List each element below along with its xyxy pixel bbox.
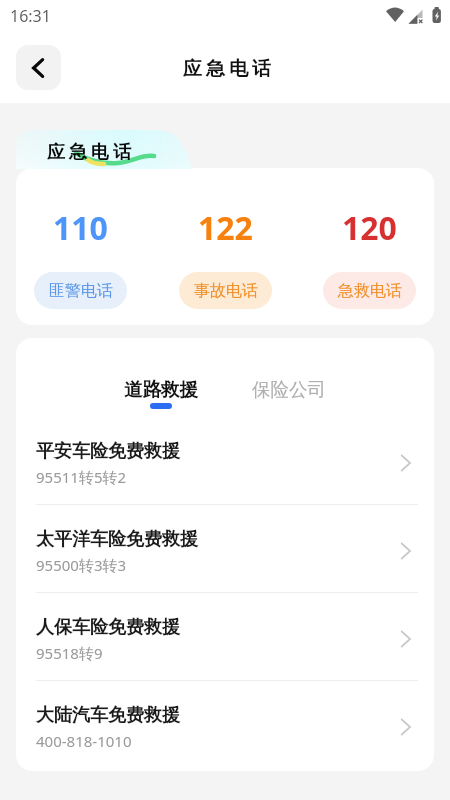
button[interactable]: 保险公司 — [252, 338, 326, 415]
staticText: 16:31 — [10, 5, 51, 27]
button[interactable]: 110 — [34, 168, 127, 325]
staticText: 110 — [53, 206, 108, 240]
button[interactable]: 120 — [323, 168, 416, 325]
staticText: 95500转3转3 — [36, 555, 127, 575]
staticText: 平安车险免费救援 — [36, 440, 180, 463]
staticText: 大陆汽车免费救援 — [36, 704, 180, 727]
button[interactable]: 太平洋车险免费救援 — [16, 505, 434, 592]
staticText: 保险公司 — [252, 378, 326, 401]
button[interactable]: 大陆汽车免费救援 — [16, 681, 434, 768]
button[interactable]: 平安车险免费救援 — [16, 417, 434, 504]
staticText: 急救电话 — [338, 281, 402, 301]
staticText: 95511转5转2 — [36, 467, 127, 487]
staticText: 400-818-1010 — [36, 731, 132, 751]
staticText: 匪警电话 — [49, 281, 113, 301]
staticText: 122 — [198, 206, 253, 240]
staticText: 事故电话 — [194, 281, 258, 301]
button[interactable]: Back — [16, 45, 61, 90]
staticText: 太平洋车险免费救援 — [36, 528, 198, 551]
button[interactable]: 道路救援 — [124, 338, 198, 415]
button[interactable]: 122 — [179, 168, 272, 325]
staticText: 应急电话 — [45, 141, 133, 164]
staticText: 道路救援 — [124, 378, 198, 401]
staticText: 120 — [342, 206, 397, 240]
staticText: 95518转9 — [36, 643, 103, 663]
staticText: 人保车险免费救援 — [36, 616, 180, 639]
staticText: 应急电话 — [181, 57, 273, 81]
button[interactable]: 人保车险免费救援 — [16, 593, 434, 680]
